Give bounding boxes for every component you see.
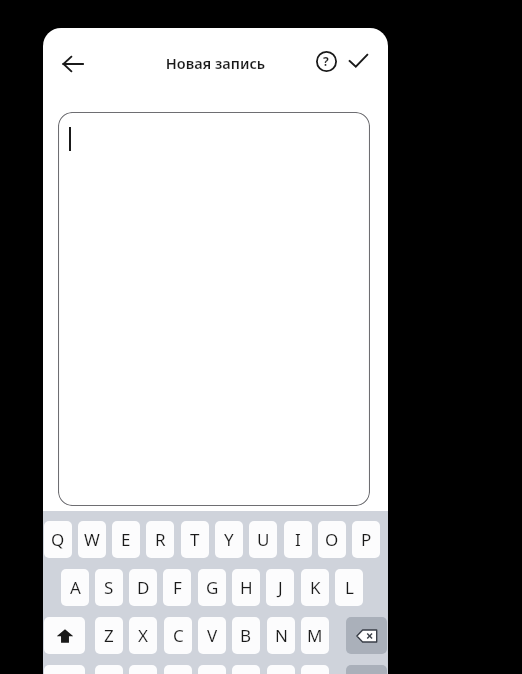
button[interactable]: Key: [346, 665, 387, 674]
button[interactable]: Shift: [44, 617, 85, 654]
staticText: Q: [51, 528, 65, 551]
button[interactable]: Back: [51, 42, 95, 86]
button[interactable]: W: [78, 521, 106, 558]
staticText: H: [240, 576, 253, 599]
staticText: W: [84, 528, 100, 551]
button[interactable]: L: [335, 569, 363, 606]
button[interactable]: X: [129, 617, 157, 654]
button[interactable]: H: [232, 569, 260, 606]
staticText: J: [278, 576, 283, 599]
button[interactable]: D: [129, 569, 157, 606]
staticText: C: [173, 624, 184, 647]
button[interactable]: Save: [339, 42, 377, 80]
staticText: I: [295, 528, 301, 551]
staticText: O: [325, 528, 339, 551]
button[interactable]: F: [163, 569, 191, 606]
staticText: E: [121, 528, 131, 551]
button[interactable]: K: [301, 569, 329, 606]
staticText: F: [173, 576, 182, 599]
staticText: Z: [104, 624, 114, 647]
button[interactable]: Backspace: [346, 617, 387, 654]
staticText: P: [361, 528, 372, 551]
button[interactable]: Q: [44, 521, 72, 558]
staticText: Y: [224, 528, 234, 551]
button[interactable]: Key: [301, 665, 329, 674]
staticText: R: [155, 528, 166, 551]
button[interactable]: N: [267, 617, 295, 654]
button[interactable]: B: [232, 617, 260, 654]
button[interactable]: Key: [232, 665, 260, 674]
staticText: D: [137, 576, 150, 599]
button[interactable]: Y: [215, 521, 243, 558]
button[interactable]: Key: [164, 665, 192, 674]
button[interactable]: U: [249, 521, 277, 558]
staticText: S: [104, 576, 114, 599]
staticText: B: [240, 624, 252, 647]
button[interactable]: Key: [95, 665, 123, 674]
button[interactable]: S: [95, 569, 123, 606]
staticText: A: [70, 576, 81, 599]
button[interactable]: M: [301, 617, 329, 654]
button[interactable]: Key: [129, 665, 157, 674]
staticText: T: [190, 528, 200, 551]
button[interactable]: Help: [307, 42, 345, 80]
staticText: K: [310, 576, 321, 599]
staticText: ?: [323, 53, 329, 69]
button[interactable]: G: [198, 569, 226, 606]
staticText: M: [307, 624, 323, 647]
staticText: N: [275, 624, 288, 647]
button[interactable]: V: [198, 617, 226, 654]
button[interactable]: Z: [95, 617, 123, 654]
button[interactable]: P: [352, 521, 380, 558]
button[interactable]: J: [266, 569, 294, 606]
staticText: V: [207, 624, 218, 647]
staticText: X: [138, 624, 148, 647]
button[interactable]: Key: [267, 665, 295, 674]
button[interactable]: C: [164, 617, 192, 654]
button[interactable]: O: [318, 521, 346, 558]
staticText: G: [206, 576, 219, 599]
button[interactable]: A: [61, 569, 89, 606]
button[interactable]: T: [181, 521, 209, 558]
button[interactable]: Key: [44, 665, 85, 674]
button[interactable]: Key: [198, 665, 226, 674]
button[interactable]: [58, 112, 370, 506]
button[interactable]: I: [284, 521, 312, 558]
staticText: L: [345, 576, 354, 599]
staticText: U: [257, 528, 270, 551]
button[interactable]: E: [112, 521, 140, 558]
button[interactable]: R: [146, 521, 174, 558]
staticText: Новая запись: [43, 53, 388, 73]
